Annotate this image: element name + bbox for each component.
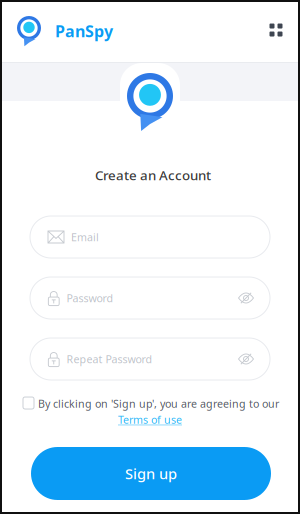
staticText: Create an Account	[95, 166, 211, 184]
button[interactable]: Email	[30, 216, 270, 258]
staticText: By clicking on 'Sign up', you are agreei…	[38, 396, 279, 411]
button[interactable]: Repeat Password	[30, 338, 270, 380]
button[interactable]: Terms of use	[0, 413, 300, 426]
staticText: Sign up	[125, 464, 177, 483]
staticText: PanSpy	[55, 20, 113, 42]
staticText: Terms of use	[118, 412, 182, 427]
button[interactable]: Sign up	[31, 447, 271, 500]
staticText: Email	[71, 230, 99, 244]
staticText: Repeat Password	[66, 352, 152, 366]
button[interactable]: Password	[30, 277, 270, 319]
staticText: Password	[66, 291, 113, 305]
button[interactable]: Agree to terms	[23, 397, 34, 409]
button[interactable]: Menu	[261, 15, 291, 45]
